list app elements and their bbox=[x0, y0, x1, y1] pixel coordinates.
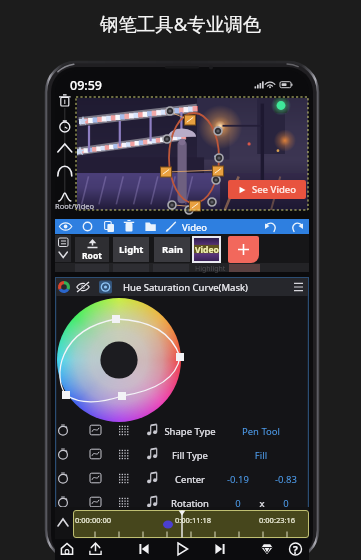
staticText: Hue Saturation Curve(Mask) bbox=[123, 281, 248, 294]
button[interactable]: Light bbox=[113, 237, 149, 262]
staticText: 钢笔工具&专业调色 bbox=[0, 11, 361, 36]
staticText: ? bbox=[293, 543, 298, 557]
staticText: 0:00:00:00 bbox=[75, 515, 112, 525]
staticText: Video bbox=[182, 221, 208, 234]
staticText: Highlight bbox=[195, 264, 226, 274]
button[interactable]: Add layer bbox=[228, 236, 259, 263]
staticText: Rain bbox=[162, 243, 183, 256]
staticText: Root/Video bbox=[55, 201, 95, 211]
staticText: Fill Type bbox=[164, 449, 216, 462]
staticText: Fill bbox=[231, 449, 291, 462]
staticText: Center bbox=[164, 473, 216, 486]
staticText: Light bbox=[119, 243, 144, 256]
staticText: -0.19 bbox=[220, 473, 256, 486]
staticText: Shape Type bbox=[164, 425, 216, 438]
button[interactable]: Video bbox=[55, 219, 309, 234]
button[interactable]: See Video bbox=[228, 180, 306, 199]
button[interactable]: Video bbox=[194, 238, 219, 261]
staticText: See Video bbox=[247, 183, 297, 196]
staticText: 0 bbox=[268, 497, 304, 510]
staticText: 09:59 bbox=[70, 77, 103, 94]
staticText: -0.83 bbox=[268, 473, 304, 486]
button[interactable]: Rotation bbox=[56, 490, 308, 514]
staticText: x bbox=[252, 497, 272, 510]
staticText: Rotation bbox=[164, 497, 216, 510]
staticText: Root bbox=[82, 250, 102, 262]
button[interactable]: Fill Type bbox=[56, 442, 308, 466]
staticText: 0 bbox=[220, 497, 256, 510]
button[interactable]: Root bbox=[75, 237, 109, 262]
staticText: Video bbox=[195, 244, 219, 256]
button[interactable]: Shape Type bbox=[56, 418, 308, 442]
staticText: 0:00:11:18 bbox=[175, 515, 212, 525]
button[interactable]: Center bbox=[56, 466, 308, 490]
staticText: Pen Tool bbox=[231, 425, 291, 438]
staticText: 0:00:23:16 bbox=[259, 515, 296, 525]
button[interactable]: Hue Saturation Curve(Mask) bbox=[56, 278, 308, 296]
button[interactable]: Rain bbox=[154, 237, 190, 262]
